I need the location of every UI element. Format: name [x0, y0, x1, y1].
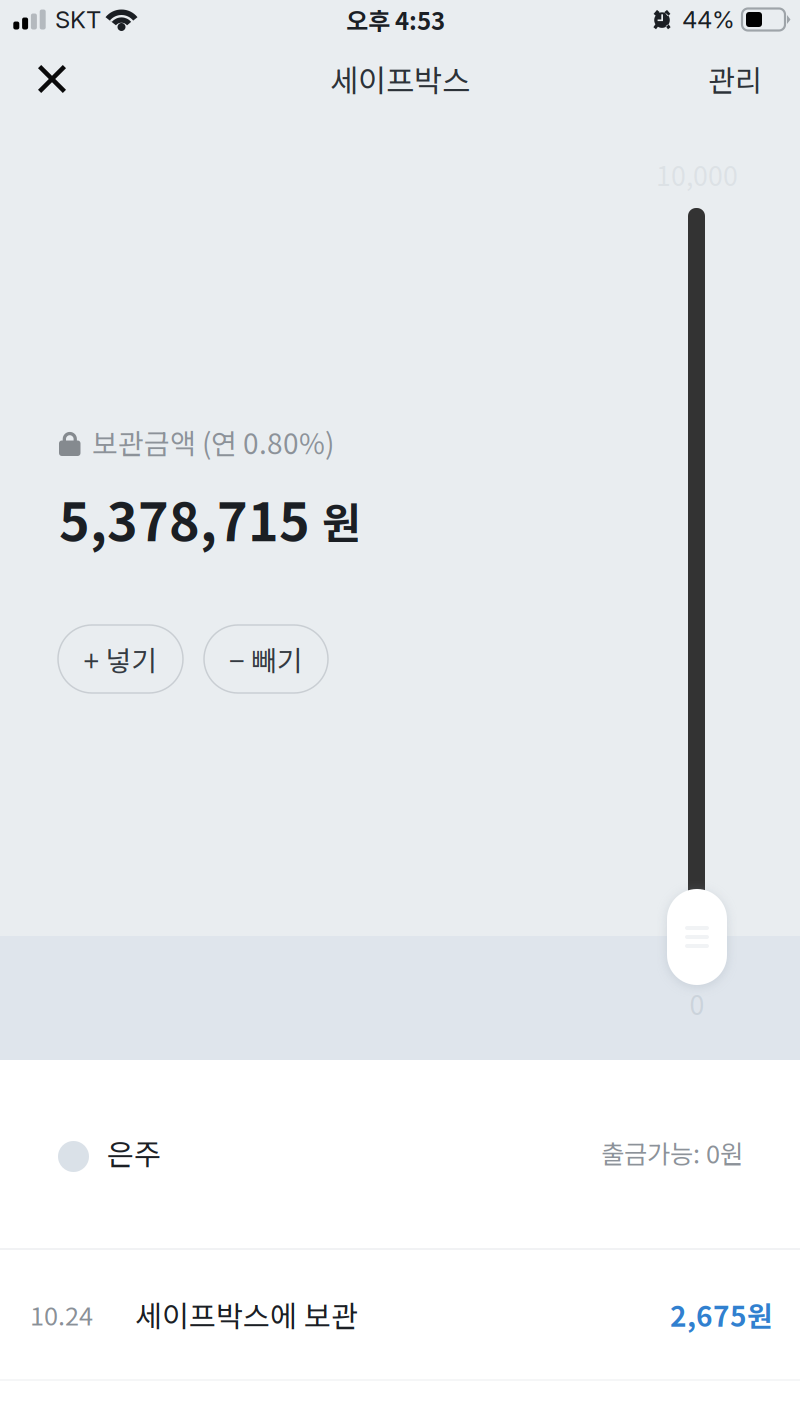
- staticText: 관리: [708, 58, 762, 100]
- staticText: SKT: [55, 5, 101, 34]
- button[interactable]: − 빼기: [204, 625, 328, 693]
- staticText: 2,675원: [670, 1294, 773, 1335]
- button[interactable]: 관리: [682, 44, 762, 114]
- staticText: 5,378,715: [59, 481, 310, 556]
- staticText: 10.24: [30, 1296, 93, 1333]
- staticText: 은주: [107, 1131, 161, 1174]
- staticText: 0: [689, 984, 704, 1023]
- staticText: 원: [322, 489, 361, 551]
- button[interactable]: 닫기: [12, 42, 92, 116]
- staticText: 10,000: [656, 155, 738, 194]
- staticText: + 넣기: [83, 639, 157, 679]
- staticText: 보관금액 (연 0.80%): [92, 422, 334, 462]
- button[interactable]: 10.24: [0, 1250, 800, 1379]
- staticText: 출금가능: 0원: [601, 1134, 743, 1171]
- button[interactable]: + 넣기: [58, 625, 183, 693]
- staticText: 오후 4:53: [346, 2, 445, 37]
- staticText: − 빼기: [229, 639, 303, 679]
- staticText: 세이프박스에 보관: [135, 1293, 358, 1336]
- button[interactable]: 은주: [0, 1057, 800, 1248]
- staticText: 세이프박스: [330, 57, 470, 101]
- staticText: 44%: [682, 5, 735, 34]
